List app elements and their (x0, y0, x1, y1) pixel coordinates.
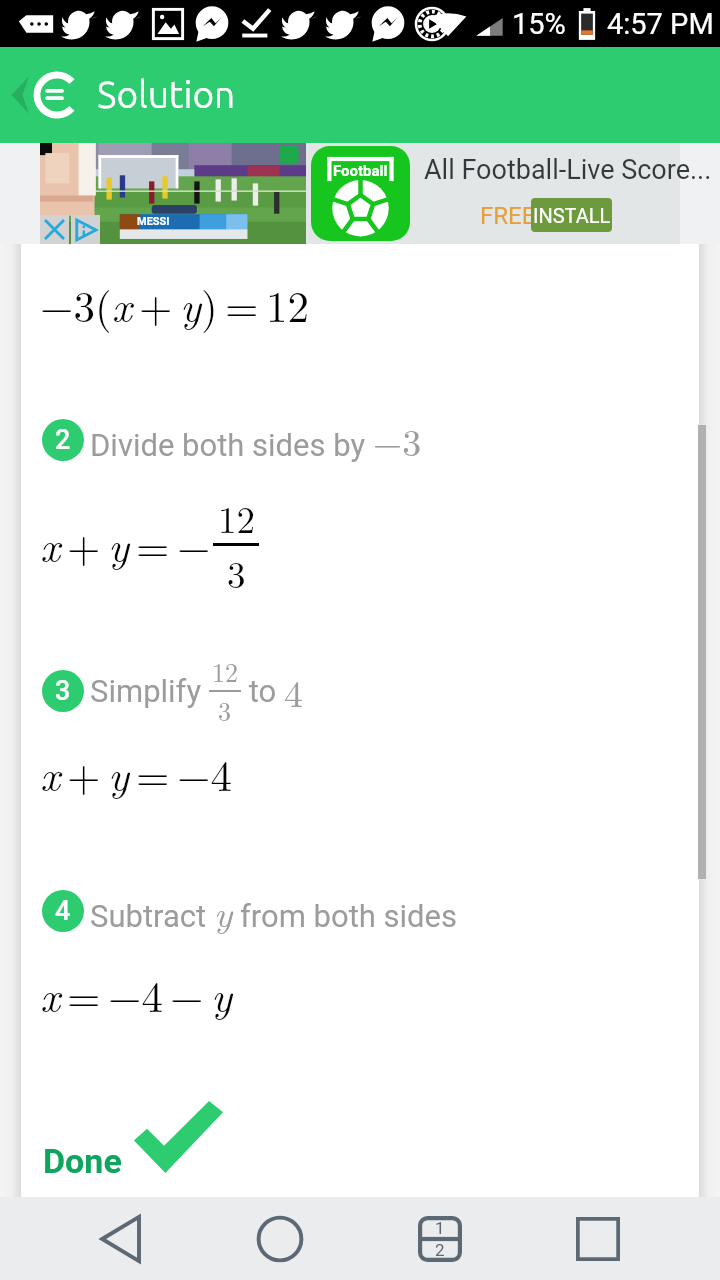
staticText: −4 (108, 964, 163, 1025)
staticText: = (136, 514, 170, 575)
staticText: Divide both sides by −3 (90, 413, 422, 467)
staticText: 12 (212, 653, 239, 690)
button[interactable]: Close ad (40, 215, 69, 244)
staticText: − (177, 514, 211, 575)
staticText: Subtract y from both sides (90, 884, 458, 938)
button[interactable]: Split screen (380, 1197, 500, 1280)
staticText: y (108, 514, 129, 575)
staticText: 3 (55, 675, 71, 707)
staticText: x (40, 514, 60, 575)
staticText: + (139, 274, 173, 335)
staticText: Done (43, 1141, 122, 1181)
button[interactable]: MESSI (40, 143, 680, 244)
staticText: −4 (177, 743, 232, 804)
staticText: −3(x (40, 274, 132, 335)
button[interactable]: Back (0, 63, 40, 127)
staticText: 4 (55, 895, 71, 927)
staticText: 4:57 PM (607, 7, 714, 41)
staticText: Football (333, 162, 388, 180)
staticText: y) (180, 274, 218, 335)
staticText: = (67, 964, 101, 1025)
button[interactable]: Ad info (71, 215, 100, 244)
staticText: 4 (284, 664, 304, 718)
staticText: Simplify (90, 673, 209, 709)
staticText: = (136, 743, 170, 804)
staticText: y (108, 743, 129, 804)
staticText: 1 (435, 1218, 445, 1238)
staticText: 2 (435, 1240, 445, 1260)
staticText: − (170, 964, 204, 1025)
staticText: x (40, 743, 60, 804)
staticText: + (67, 743, 101, 804)
staticText: 3 (227, 546, 246, 598)
staticText: = (225, 274, 259, 335)
staticText: INSTALL (533, 204, 611, 227)
button[interactable]: Home (220, 1197, 340, 1280)
staticText: x (40, 964, 60, 1025)
staticText: FREE (480, 202, 536, 230)
staticText: MESSI (137, 215, 170, 228)
staticText: Solution (97, 74, 236, 115)
staticText: + (67, 514, 101, 575)
button[interactable]: Recents (538, 1197, 658, 1280)
button[interactable]: INSTALL (531, 198, 612, 232)
staticText: 12 (218, 491, 255, 543)
staticText: 3 (218, 692, 232, 729)
staticText: 2 (55, 424, 71, 456)
staticText: y (211, 964, 232, 1025)
staticText: to (241, 673, 284, 709)
staticText: 15% (512, 7, 566, 41)
button[interactable]: Back (61, 1197, 181, 1280)
staticText: 12 (266, 274, 309, 335)
staticText: All Football-Live Score... (424, 154, 712, 186)
